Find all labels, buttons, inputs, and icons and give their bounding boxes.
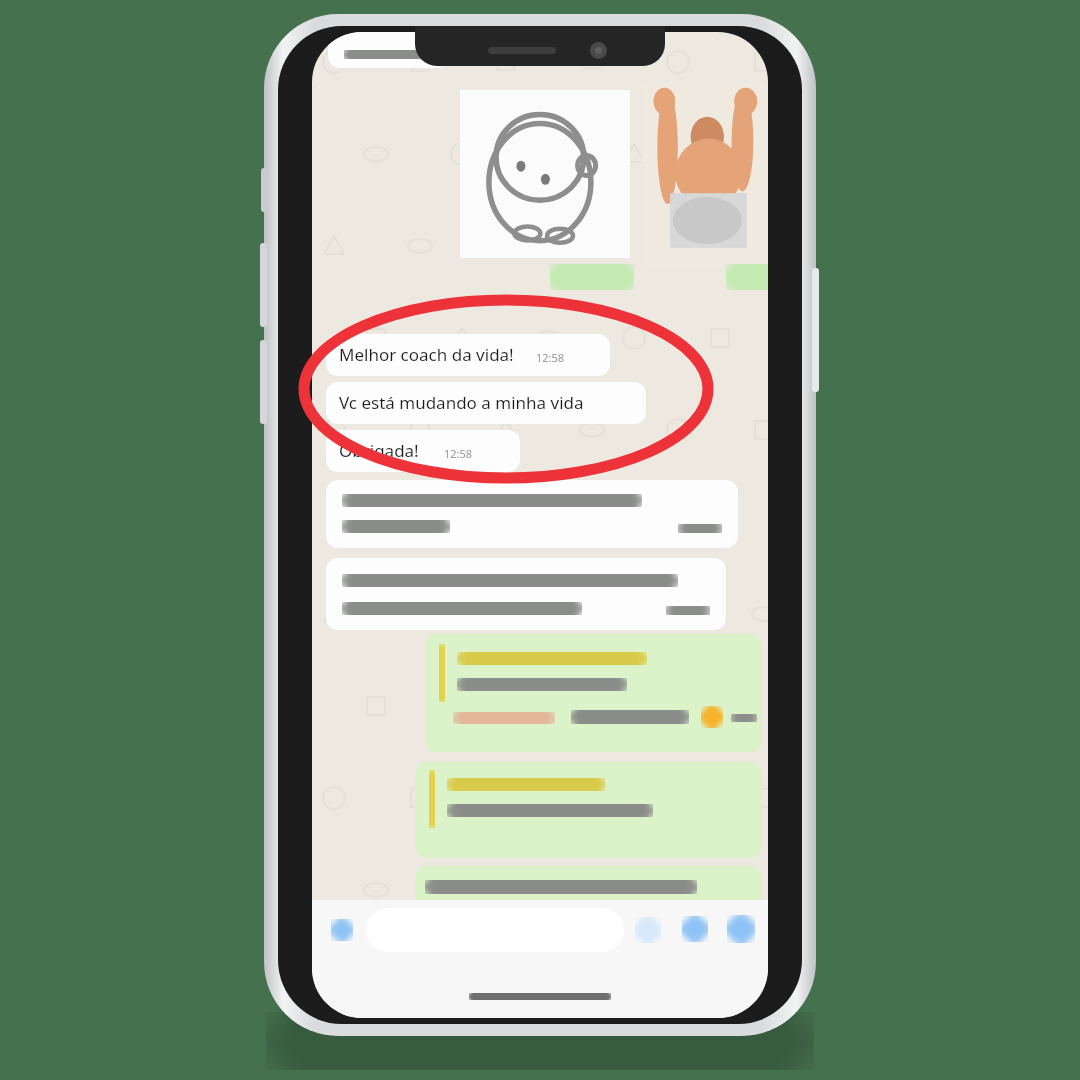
button[interactable]: Vc está mudando a minha vida — [326, 382, 646, 424]
staticText: Obrigada! — [339, 439, 419, 462]
staticText: Melhor coach da vida! — [339, 343, 514, 366]
other: Silent switch — [261, 168, 267, 212]
button[interactable]: Emoji — [324, 912, 360, 948]
other: Volume down — [260, 340, 267, 424]
staticText: 12:58 — [536, 350, 565, 365]
other: Volume up — [260, 243, 267, 327]
button[interactable]: Camera — [676, 910, 714, 948]
button[interactable]: Melhor coach da vida! — [326, 334, 610, 376]
other: Power — [812, 268, 819, 392]
button[interactable]: Attach — [630, 912, 666, 948]
staticText: 12:58 — [444, 446, 473, 461]
staticText: Vc está mudando a minha vida — [339, 391, 584, 414]
button[interactable]: Voice message — [722, 910, 760, 948]
button[interactable]: Obrigada! — [326, 430, 520, 472]
